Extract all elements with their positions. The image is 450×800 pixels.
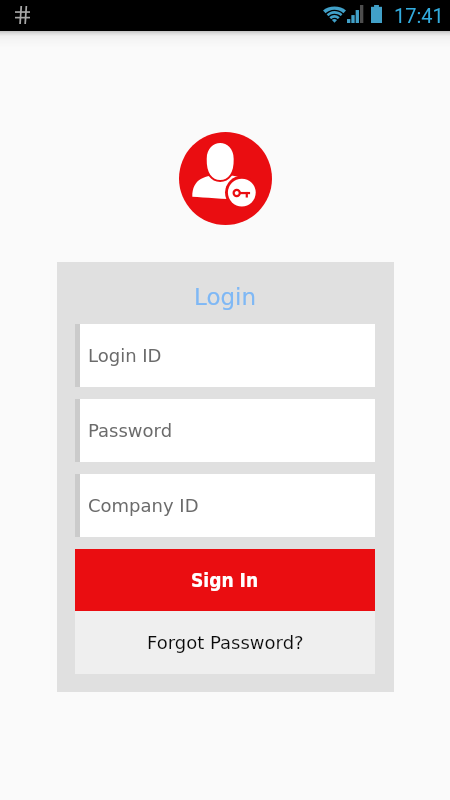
button[interactable]: Password	[80, 399, 375, 462]
staticText: Company ID	[88, 495, 199, 516]
staticText: 17:41	[394, 4, 444, 27]
button[interactable]: Forgot Password?	[75, 611, 375, 674]
other: Notification	[15, 6, 30, 24]
staticText: Password	[88, 420, 173, 441]
staticText: Login ID	[88, 345, 162, 366]
other: Login	[179, 132, 272, 225]
other: Wi-Fi signal	[323, 6, 346, 23]
button[interactable]: Company ID	[80, 474, 375, 537]
staticText: Forgot Password?	[147, 632, 304, 653]
other: Mobile signal strength	[347, 5, 365, 23]
button[interactable]: Sign In	[75, 549, 375, 611]
staticText: Login	[194, 284, 257, 311]
other: Battery	[371, 5, 382, 23]
button[interactable]: Login ID	[80, 324, 375, 387]
staticText: Sign In	[191, 569, 259, 591]
